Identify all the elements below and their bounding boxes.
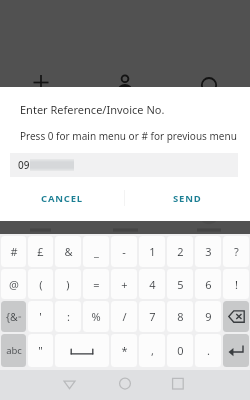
other: Enter [228, 344, 244, 357]
staticText: _ [94, 244, 99, 259]
button[interactable]: Space [55, 334, 109, 367]
staticText: abc [6, 344, 22, 357]
staticText: * [121, 343, 128, 358]
button[interactable]: Recents [161, 370, 196, 400]
staticText: 8 [177, 309, 184, 324]
button[interactable]: 4 [139, 269, 165, 299]
button[interactable]: # [1, 236, 26, 267]
staticText: 4 [149, 277, 156, 292]
staticText: % [91, 309, 101, 324]
staticText: @ [9, 277, 19, 292]
button[interactable]: * [111, 334, 137, 367]
button[interactable]: Back [52, 370, 87, 400]
button[interactable]: / [111, 301, 137, 332]
button[interactable]: 1 [139, 236, 165, 267]
staticText: 3 [205, 244, 212, 259]
button[interactable]: 5 [167, 269, 193, 299]
staticText: 5 [177, 277, 184, 292]
staticText: = [93, 277, 100, 292]
staticText: - [122, 244, 126, 259]
button[interactable]: ) [55, 269, 81, 299]
button[interactable]: Backspace [223, 301, 249, 332]
button[interactable]: 09 [10, 153, 238, 177]
staticText: # [10, 244, 18, 259]
button[interactable]: 9 [195, 301, 221, 332]
staticText: ( [39, 277, 43, 292]
button[interactable]: " [28, 334, 53, 367]
button[interactable]: ! [223, 269, 249, 299]
button[interactable]: : [55, 301, 81, 332]
staticText: ' [39, 309, 42, 324]
button[interactable]: = [83, 269, 109, 299]
button[interactable]: 7 [139, 301, 165, 332]
button[interactable]: @ [1, 269, 26, 299]
staticText: CANCEL [41, 192, 83, 205]
other: Space [55, 345, 109, 357]
button[interactable]: 3 [195, 236, 221, 267]
staticText: 9 [205, 309, 212, 324]
staticText: = [18, 313, 22, 321]
staticText: ) [66, 277, 70, 292]
button[interactable]: £ [28, 236, 53, 267]
button[interactable]: & [55, 236, 81, 267]
button[interactable]: ( [28, 269, 53, 299]
staticText: " [38, 343, 43, 358]
button[interactable]: abc [1, 334, 26, 367]
staticText: Press 0 for main menu or # for previous … [20, 129, 237, 143]
staticText: 1 [149, 244, 156, 259]
staticText: 0 [177, 343, 184, 358]
staticText: ! [235, 277, 238, 292]
other: Backspace [228, 310, 245, 323]
button[interactable]: . [195, 334, 221, 367]
staticText: Enter Reference/Invoice No. [20, 102, 165, 117]
button[interactable]: - [111, 236, 137, 267]
button[interactable]: Home [108, 370, 143, 400]
button[interactable]: CANCEL [0, 186, 124, 210]
staticText: : [67, 309, 70, 324]
button[interactable]: _ [83, 236, 109, 267]
staticText: SEND [173, 192, 202, 205]
staticText: 2 [177, 244, 184, 259]
staticText: / [122, 309, 127, 324]
staticText: 6 [205, 277, 212, 292]
staticText: £ [37, 244, 44, 259]
staticText: 7 [149, 309, 156, 324]
button[interactable]: ' [28, 301, 53, 332]
staticText: + [121, 277, 128, 292]
button[interactable]: 6 [195, 269, 221, 299]
staticText: & [64, 244, 73, 259]
button[interactable]: 8 [167, 301, 193, 332]
button[interactable]: % [83, 301, 109, 332]
button[interactable]: ? [223, 236, 249, 267]
staticText: 09 [18, 158, 30, 172]
staticText: , [151, 343, 154, 358]
button[interactable]: + [111, 269, 137, 299]
button[interactable]: , [139, 334, 165, 367]
staticText: . [207, 343, 210, 358]
button[interactable]: 0 [167, 334, 193, 367]
button[interactable]: {& [1, 301, 26, 332]
staticText: ? [234, 244, 239, 259]
staticText: {& [6, 310, 18, 324]
button[interactable]: 2 [167, 236, 193, 267]
button[interactable]: Enter [223, 334, 249, 367]
button[interactable]: SEND [125, 186, 250, 210]
